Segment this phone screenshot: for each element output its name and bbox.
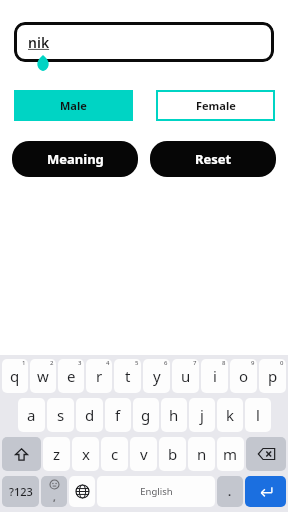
staticText: . xyxy=(228,484,232,499)
button[interactable]: Meaning xyxy=(12,141,138,177)
button[interactable]: f xyxy=(105,398,131,432)
staticText: s xyxy=(57,405,65,425)
staticText: Female xyxy=(196,98,236,113)
staticText: u xyxy=(181,366,191,386)
staticText: 2 xyxy=(50,359,54,367)
button[interactable]: n xyxy=(188,437,215,471)
staticText: 4 xyxy=(106,359,110,367)
button[interactable]: e xyxy=(58,359,84,393)
button[interactable]: Change language xyxy=(69,476,95,507)
staticText: z xyxy=(53,444,61,464)
staticText: a xyxy=(27,405,36,425)
button[interactable]: t xyxy=(114,359,141,393)
button[interactable]: English xyxy=(97,476,215,507)
staticText: k xyxy=(226,405,235,425)
staticText: w xyxy=(37,366,49,386)
button[interactable]: nik xyxy=(14,22,274,62)
button[interactable]: s xyxy=(47,398,74,432)
button[interactable]: x xyxy=(72,437,99,471)
button[interactable]: o xyxy=(230,359,257,393)
button[interactable]: Emoji xyxy=(41,476,67,507)
button[interactable]: Female xyxy=(156,90,275,121)
button[interactable]: Backspace xyxy=(246,437,286,471)
button[interactable]: Reset xyxy=(150,141,276,177)
staticText: 8 xyxy=(222,359,226,367)
button[interactable]: u xyxy=(172,359,199,393)
staticText: ?123 xyxy=(9,484,33,499)
staticText: n xyxy=(197,444,207,464)
button[interactable]: w xyxy=(30,359,56,393)
button[interactable]: l xyxy=(245,398,271,432)
button[interactable]: b xyxy=(159,437,186,471)
staticText: Meaning xyxy=(47,150,104,168)
staticText: o xyxy=(239,366,249,386)
staticText: 7 xyxy=(193,359,197,367)
button[interactable]: h xyxy=(161,398,187,432)
staticText: p xyxy=(268,366,278,386)
staticText: h xyxy=(169,405,179,425)
button[interactable]: Male xyxy=(14,90,133,121)
staticText: l xyxy=(256,405,260,425)
button[interactable]: ?123 xyxy=(2,476,39,507)
button[interactable]: d xyxy=(76,398,103,432)
staticText: c xyxy=(111,444,119,464)
button[interactable]: c xyxy=(101,437,128,471)
staticText: i xyxy=(213,366,217,386)
staticText: d xyxy=(85,405,95,425)
staticText: j xyxy=(200,405,204,425)
button[interactable]: Shift xyxy=(2,437,41,471)
button[interactable]: Enter xyxy=(245,476,286,507)
staticText: , xyxy=(53,490,56,504)
staticText: f xyxy=(115,405,121,425)
button[interactable]: k xyxy=(217,398,243,432)
button[interactable]: . xyxy=(217,476,243,507)
staticText: 1 xyxy=(22,359,26,367)
staticText: Reset xyxy=(195,150,232,168)
staticText: nik xyxy=(28,33,50,52)
button[interactable]: a xyxy=(18,398,45,432)
staticText: e xyxy=(67,366,76,386)
staticText: v xyxy=(140,444,148,464)
staticText: m xyxy=(223,444,238,464)
button[interactable]: y xyxy=(143,359,170,393)
button[interactable]: i xyxy=(201,359,228,393)
button[interactable]: g xyxy=(133,398,159,432)
button[interactable]: m xyxy=(217,437,244,471)
staticText: t xyxy=(125,366,131,386)
button[interactable]: j xyxy=(189,398,215,432)
button[interactable]: p xyxy=(259,359,286,393)
staticText: 0 xyxy=(280,359,284,367)
staticText: Male xyxy=(60,98,87,113)
button[interactable]: z xyxy=(43,437,70,471)
staticText: 9 xyxy=(251,359,255,367)
button[interactable]: q xyxy=(2,359,28,393)
staticText: English xyxy=(140,485,173,498)
staticText: y xyxy=(153,366,161,386)
button[interactable]: v xyxy=(130,437,157,471)
staticText: b xyxy=(168,444,178,464)
staticText: g xyxy=(141,405,151,425)
staticText: q xyxy=(10,366,20,386)
staticText: 3 xyxy=(78,359,82,367)
staticText: x xyxy=(82,444,90,464)
staticText: r xyxy=(96,366,103,386)
button[interactable]: r xyxy=(86,359,112,393)
staticText: 5 xyxy=(135,359,139,367)
staticText: 6 xyxy=(164,359,168,367)
